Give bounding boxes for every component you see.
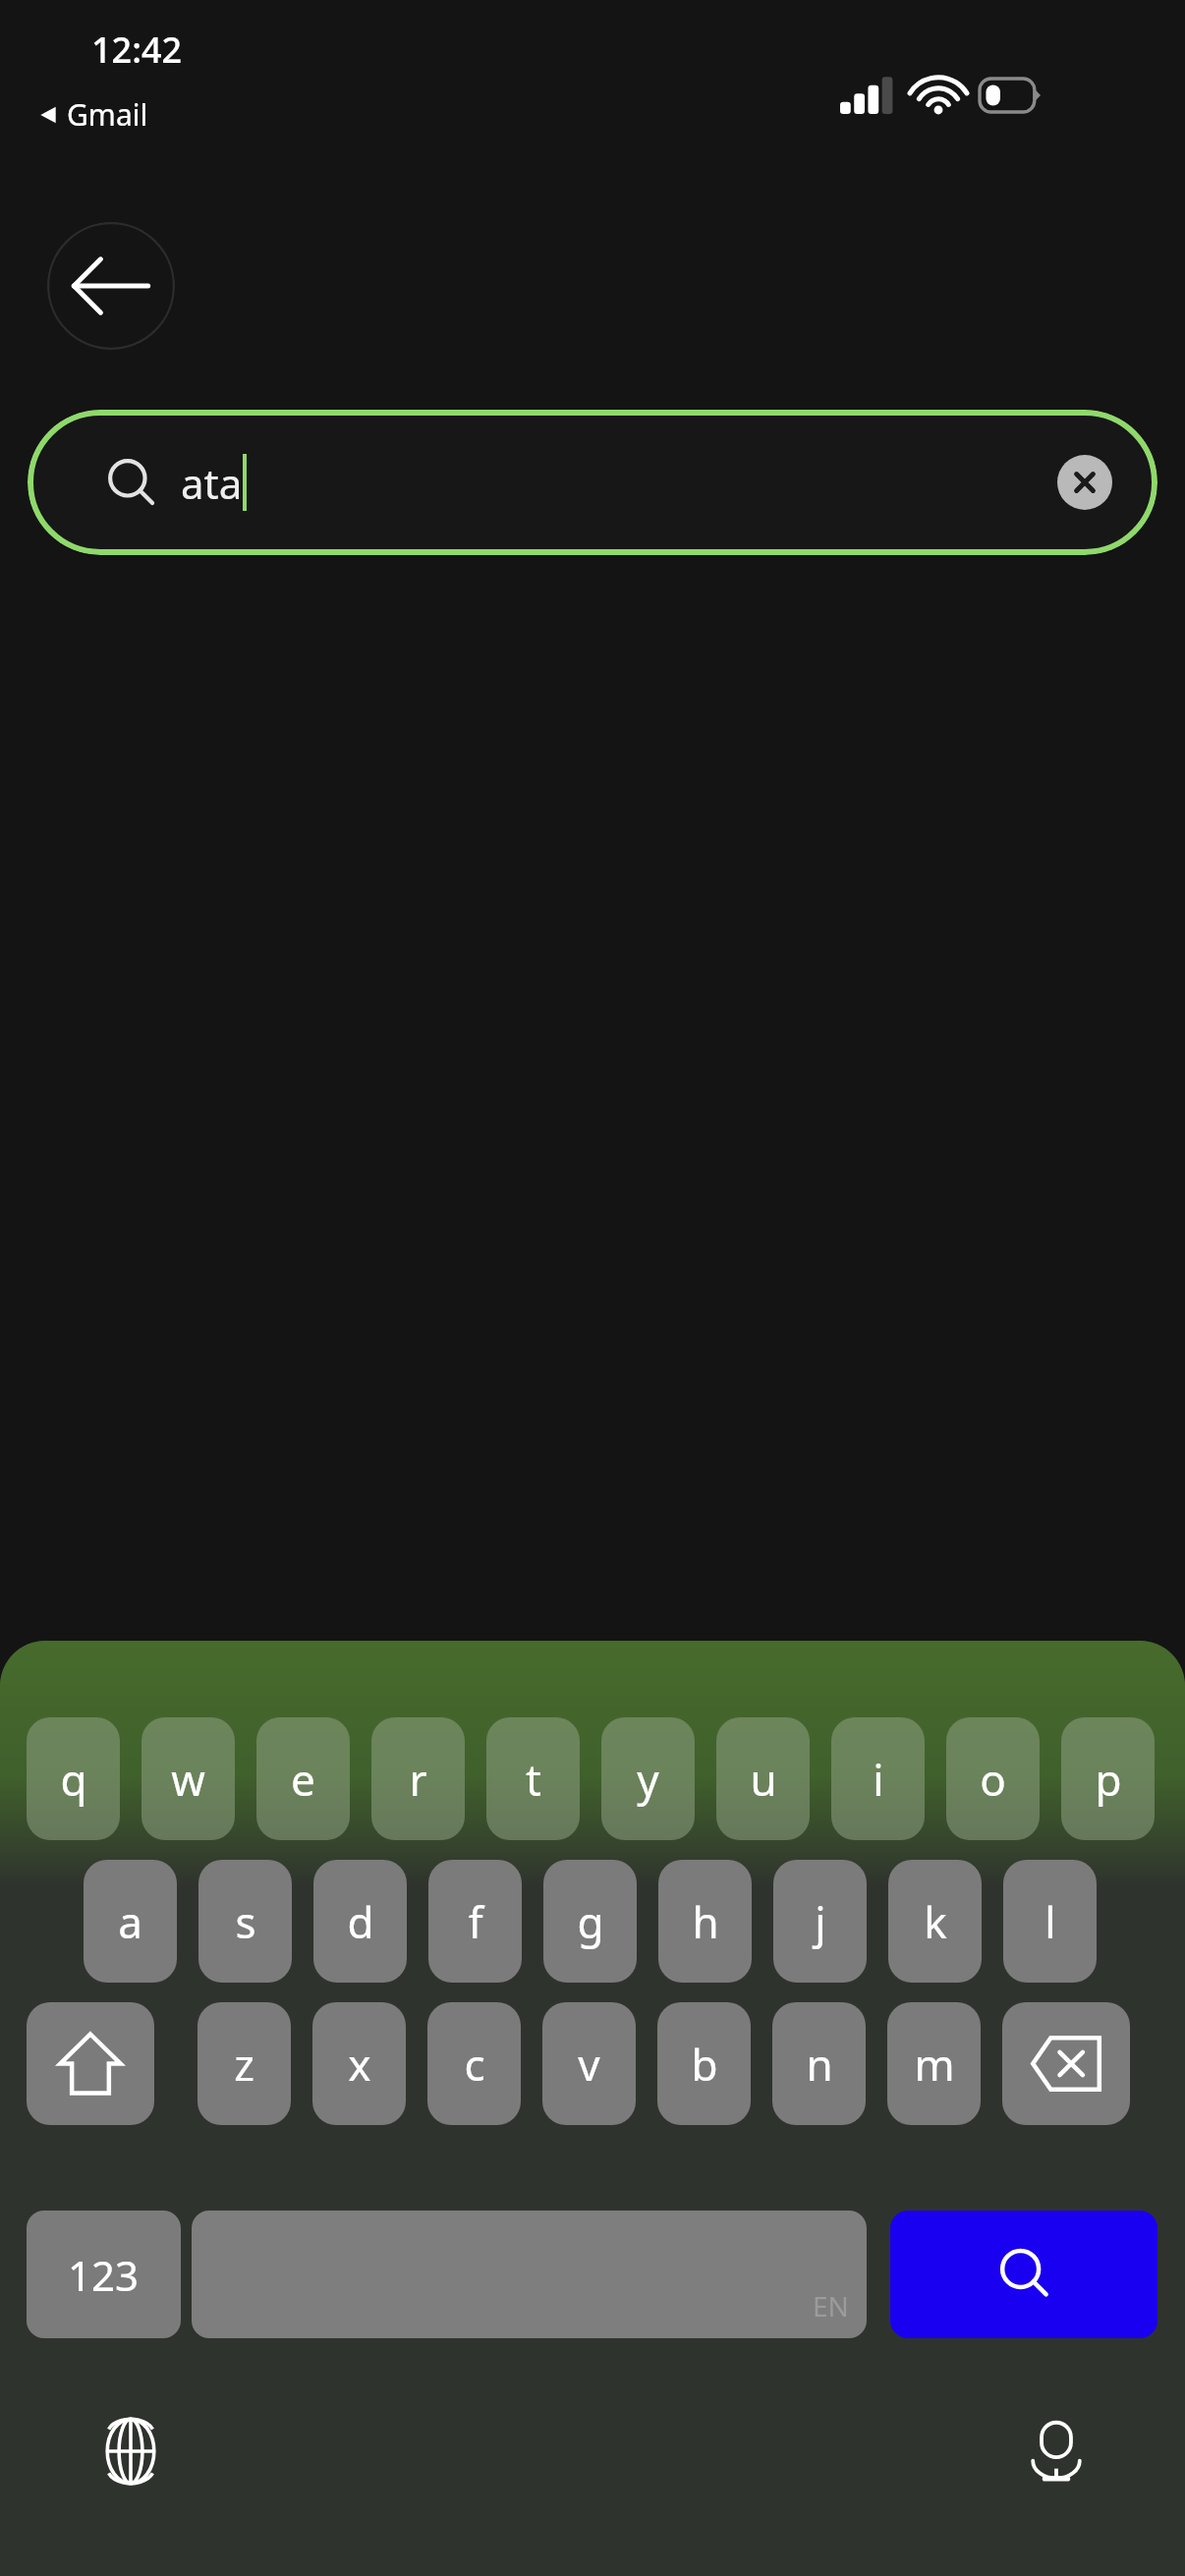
staticText: x — [348, 2035, 371, 2094]
staticText: s — [235, 1892, 256, 1951]
button[interactable]: n — [772, 2002, 866, 2125]
staticText: 12:42 — [91, 26, 183, 74]
button[interactable]: h — [658, 1860, 752, 1983]
staticText: z — [234, 2035, 254, 2094]
staticText: b — [691, 2035, 718, 2094]
staticText: e — [291, 1750, 315, 1809]
button[interactable]: Voice input — [1002, 2397, 1110, 2505]
button[interactable]: p — [1061, 1717, 1155, 1840]
staticText: p — [1095, 1750, 1122, 1809]
button[interactable]: k — [888, 1860, 982, 1983]
button[interactable]: l — [1003, 1860, 1097, 1983]
button[interactable]: Back — [47, 222, 175, 350]
staticText: i — [873, 1750, 884, 1809]
staticText: g — [577, 1892, 604, 1951]
button[interactable]: o — [946, 1717, 1040, 1840]
button[interactable]: c — [427, 2002, 521, 2125]
staticText: v — [578, 2035, 600, 2094]
button[interactable]: t — [486, 1717, 580, 1840]
staticText: k — [924, 1892, 947, 1951]
button[interactable]: z — [197, 2002, 291, 2125]
staticText: w — [171, 1750, 205, 1809]
button[interactable]: a — [84, 1860, 177, 1983]
button[interactable]: Search — [890, 2211, 1157, 2338]
staticText: r — [409, 1750, 427, 1809]
button[interactable]: Clear — [1057, 455, 1112, 510]
button[interactable]: d — [313, 1860, 407, 1983]
staticText: j — [815, 1892, 826, 1951]
button[interactable]: q — [27, 1717, 120, 1840]
button[interactable]: w — [141, 1717, 235, 1840]
button[interactable]: Space — [192, 2211, 867, 2338]
button[interactable]: j — [773, 1860, 867, 1983]
button[interactable]: ata — [28, 410, 1157, 555]
staticText: n — [806, 2035, 833, 2094]
staticText: a — [118, 1892, 142, 1951]
button[interactable]: v — [542, 2002, 636, 2125]
button[interactable]: r — [371, 1717, 465, 1840]
button[interactable]: u — [716, 1717, 810, 1840]
button[interactable]: g — [543, 1860, 637, 1983]
staticText: m — [914, 2035, 955, 2094]
staticText: f — [468, 1892, 483, 1951]
staticText: ata — [181, 455, 243, 511]
staticText: EN — [813, 2287, 849, 2324]
button[interactable]: s — [198, 1860, 292, 1983]
staticText: o — [980, 1750, 1006, 1809]
staticText: t — [526, 1750, 541, 1809]
button[interactable]: f — [428, 1860, 522, 1983]
button[interactable]: m — [887, 2002, 981, 2125]
button[interactable]: 123 — [27, 2211, 181, 2338]
staticText: c — [464, 2035, 485, 2094]
button[interactable]: Change keyboard language — [77, 2397, 185, 2505]
button[interactable]: b — [657, 2002, 751, 2125]
button[interactable]: x — [312, 2002, 406, 2125]
staticText: l — [1044, 1892, 1056, 1951]
button[interactable]: Shift — [27, 2002, 154, 2125]
staticText: y — [637, 1750, 659, 1809]
staticText: u — [750, 1750, 777, 1809]
button[interactable]: i — [831, 1717, 925, 1840]
staticText: 123 — [68, 2247, 140, 2303]
staticText: Gmail — [67, 94, 148, 135]
staticText: d — [347, 1892, 374, 1951]
button[interactable]: e — [256, 1717, 350, 1840]
button[interactable]: y — [601, 1717, 695, 1840]
staticText: h — [692, 1892, 719, 1951]
staticText: q — [60, 1750, 87, 1809]
button[interactable]: Backspace — [1002, 2002, 1130, 2125]
